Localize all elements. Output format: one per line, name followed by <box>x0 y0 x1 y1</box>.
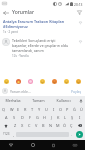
staticText: Merhaba <box>5 98 21 103</box>
button[interactable]: Yorum ekle... <box>10 89 70 94</box>
button[interactable]: A <box>2 114 10 121</box>
staticText: başarılar, ellerde ve grupların oldu <box>12 43 69 48</box>
staticText: Ğ <box>73 107 76 112</box>
button[interactable]: Emoji reaction <box>3 78 10 85</box>
button[interactable]: Z <box>11 122 19 129</box>
button[interactable]: Emoji reaction <box>27 78 34 85</box>
button[interactable]: Recents <box>43 140 64 150</box>
button[interactable]: Ü <box>78 106 85 113</box>
staticText: S <box>13 115 16 120</box>
button[interactable]: Shift <box>0 122 11 129</box>
staticText: #Edinmiyoruz <box>3 24 28 29</box>
button[interactable]: Hide keyboard <box>64 140 85 150</box>
button[interactable]: Like <box>77 19 83 25</box>
staticText: A <box>5 115 8 120</box>
staticText: J <box>51 115 53 120</box>
staticText: U <box>45 107 48 112</box>
button[interactable]: Merhaba <box>0 96 26 105</box>
button[interactable]: Tebrikleri Sonuçlandı erişti <box>0 38 85 58</box>
staticText: Yorumlar <box>12 9 35 16</box>
staticText: Tebrikleri Sonuçlandı erişti <box>12 38 56 43</box>
button[interactable]: Ç <box>68 122 75 129</box>
staticText: Kullanıcı <box>56 98 71 103</box>
button[interactable]: Home <box>22 140 43 150</box>
button[interactable]: ?123 <box>1 130 11 138</box>
staticText: Z <box>14 123 17 128</box>
button[interactable]: I <box>76 114 83 121</box>
staticText: P <box>66 107 69 112</box>
staticText: Ş <box>71 115 74 120</box>
button[interactable]: I <box>50 106 57 113</box>
button[interactable]: Send <box>74 130 84 138</box>
button[interactable]: Filter comments <box>74 7 85 18</box>
button[interactable]: Back <box>0 7 11 18</box>
button[interactable]: Backspace <box>75 122 85 129</box>
button[interactable]: O <box>57 106 64 113</box>
staticText: Y <box>38 107 41 112</box>
button[interactable]: Emoji reaction <box>39 78 46 85</box>
button[interactable]: R <box>22 106 29 113</box>
button[interactable]: Ö <box>61 122 68 129</box>
staticText: tamamlandı, canım <box>12 48 44 53</box>
staticText: Yorum ekle... <box>10 89 31 94</box>
button[interactable]: Voice input <box>76 96 85 105</box>
staticText: T <box>31 107 34 112</box>
button[interactable]: Tamam <box>26 96 51 105</box>
button[interactable]: U <box>43 106 50 113</box>
button[interactable]: F <box>26 114 34 121</box>
button[interactable]: D <box>18 114 26 121</box>
staticText: V <box>35 123 38 128</box>
button[interactable]: Y <box>36 106 43 113</box>
button[interactable]: L <box>62 114 69 121</box>
button[interactable]: P <box>64 106 71 113</box>
staticText: Ç <box>70 123 73 128</box>
button[interactable]: Comma <box>11 130 16 138</box>
button[interactable]: Emoji reaction <box>51 78 58 85</box>
button[interactable]: N <box>47 122 54 129</box>
button[interactable]: Period <box>69 130 74 138</box>
button[interactable]: W <box>8 106 15 113</box>
button[interactable]: K <box>55 114 62 121</box>
button[interactable]: T <box>29 106 36 113</box>
staticText: 20:13 <box>74 2 83 6</box>
button[interactable]: Ğ <box>71 106 78 113</box>
button[interactable]: E <box>15 106 22 113</box>
staticText: I <box>79 115 81 120</box>
button[interactable]: M <box>54 122 61 129</box>
staticText: Q <box>2 107 6 112</box>
staticText: 1s · 2 yanıt <box>3 30 18 34</box>
staticText: Ü <box>80 107 83 112</box>
staticText: ?123 <box>3 132 10 136</box>
staticText: C <box>28 123 31 128</box>
button[interactable]: Emoji reaction <box>15 78 22 85</box>
button[interactable]: Kullanıcı <box>51 96 76 105</box>
staticText: O <box>59 107 63 112</box>
staticText: K <box>57 115 60 120</box>
button[interactable]: Emoji reaction <box>63 78 70 85</box>
staticText: M <box>56 123 60 128</box>
button[interactable]: G <box>34 114 41 121</box>
button[interactable]: Ş <box>69 114 76 121</box>
button[interactable]: C <box>26 122 33 129</box>
button[interactable]: Paylaş <box>70 89 83 94</box>
staticText: G <box>36 115 39 120</box>
button[interactable]: J <box>48 114 55 121</box>
button[interactable]: S <box>10 114 18 121</box>
button[interactable]: V <box>33 122 40 129</box>
button[interactable]: Like <box>77 38 83 44</box>
button[interactable]: Q <box>0 106 8 113</box>
button[interactable]: Antalya Erzurum Trabzon Kitapları <box>0 18 85 34</box>
staticText: . <box>71 132 73 137</box>
staticText: E <box>17 107 20 112</box>
button[interactable]: B <box>40 122 47 129</box>
button[interactable]: H <box>41 114 48 121</box>
staticText: Ö <box>63 123 67 128</box>
staticText: X <box>21 123 24 128</box>
staticText: F <box>29 115 32 120</box>
button[interactable]: X <box>19 122 26 129</box>
button[interactable]: Emoji reaction <box>75 78 82 85</box>
staticText: L <box>64 115 67 120</box>
button[interactable]: Back <box>0 140 22 150</box>
staticText: I <box>53 107 55 112</box>
